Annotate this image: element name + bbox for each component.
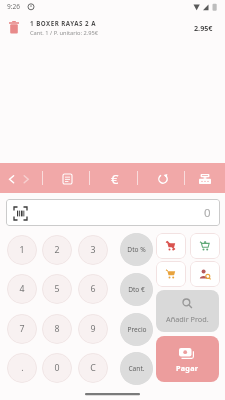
- button[interactable]: [0, 163, 42, 193]
- button[interactable]: [184, 163, 225, 193]
- button[interactable]: Pagar: [156, 336, 219, 382]
- staticText: €: [111, 170, 119, 188]
- button[interactable]: Precio: [120, 313, 153, 346]
- staticText: Pagar: [176, 363, 199, 373]
- button[interactable]: [190, 261, 220, 287]
- staticText: 0: [54, 362, 60, 374]
- button[interactable]: 7: [7, 314, 37, 344]
- button[interactable]: [42, 163, 89, 193]
- button[interactable]: .: [7, 353, 37, 383]
- staticText: 9: [90, 323, 96, 335]
- staticText: 6: [90, 283, 96, 295]
- staticText: 9:26: [7, 2, 21, 11]
- button[interactable]: [156, 261, 186, 287]
- button[interactable]: C: [78, 353, 108, 383]
- button[interactable]: [156, 233, 186, 259]
- button[interactable]: 2: [42, 235, 72, 265]
- button[interactable]: 1: [7, 235, 37, 265]
- button[interactable]: 3: [78, 235, 108, 265]
- staticText: .: [21, 362, 24, 374]
- button[interactable]: [137, 163, 184, 193]
- staticText: 0: [204, 205, 211, 221]
- button[interactable]: 0: [6, 199, 220, 226]
- staticText: 8: [54, 323, 60, 335]
- staticText: 5: [54, 283, 60, 295]
- button[interactable]: 4: [7, 274, 37, 304]
- staticText: Dto %: [127, 245, 146, 254]
- staticText: Dto €: [128, 285, 145, 294]
- button[interactable]: 8: [42, 314, 72, 344]
- staticText: 2: [54, 244, 60, 256]
- staticText: 7: [19, 323, 25, 335]
- button[interactable]: 1 BOXER RAYAS 2 A: [0, 16, 225, 42]
- button[interactable]: Añadir Prod.: [156, 290, 219, 332]
- button[interactable]: 9: [78, 314, 108, 344]
- staticText: Cant.: [128, 364, 145, 373]
- button[interactable]: Cant.: [120, 352, 153, 385]
- staticText: 3: [90, 244, 96, 256]
- staticText: Cant. 1 / P. unitario: 2.95€: [30, 29, 98, 37]
- button[interactable]: Dto €: [120, 273, 153, 306]
- staticText: Añadir Prod.: [166, 314, 209, 324]
- staticText: 1 BOXER RAYAS 2 A: [30, 19, 97, 27]
- staticText: 2.95€: [194, 23, 213, 33]
- staticText: 1: [19, 244, 25, 256]
- button[interactable]: €: [89, 163, 137, 193]
- button[interactable]: 6: [78, 274, 108, 304]
- staticText: 4: [19, 283, 25, 295]
- button[interactable]: 0: [42, 353, 72, 383]
- button[interactable]: [190, 233, 220, 259]
- button[interactable]: 5: [42, 274, 72, 304]
- button[interactable]: Dto %: [120, 233, 153, 266]
- staticText: Precio: [127, 325, 147, 334]
- staticText: C: [90, 362, 96, 374]
